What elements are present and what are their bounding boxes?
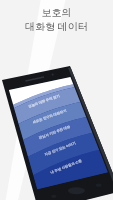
staticText: 대화형 데이터 (0, 19, 113, 33)
staticText: 보호의 (0, 6, 113, 19)
